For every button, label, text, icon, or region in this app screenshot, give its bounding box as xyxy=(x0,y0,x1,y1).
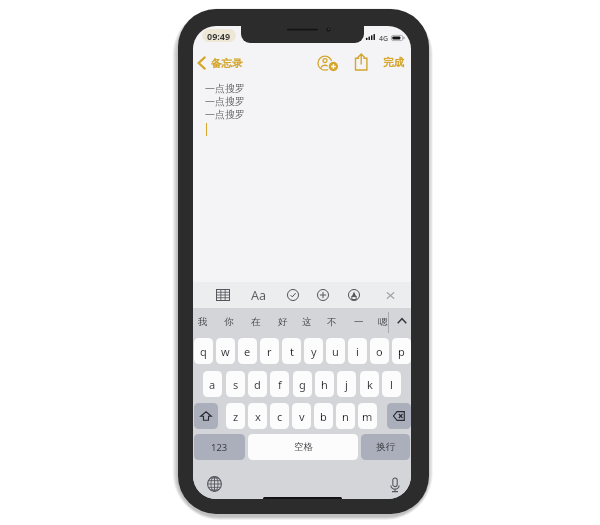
staticText: n xyxy=(342,409,349,424)
button[interactable]: Expand candidates xyxy=(390,308,411,336)
staticText: o xyxy=(376,344,383,359)
button[interactable]: s xyxy=(226,371,245,397)
staticText: m xyxy=(362,409,373,424)
staticText: 123 xyxy=(211,441,228,454)
staticText: b xyxy=(320,409,327,424)
button[interactable]: c xyxy=(270,403,289,429)
button[interactable]: 不 xyxy=(321,308,343,336)
staticText: 一点搜罗 xyxy=(205,95,245,108)
staticText: s xyxy=(233,377,239,392)
button[interactable]: Dictation xyxy=(381,471,406,496)
button[interactable]: o xyxy=(370,338,389,364)
button[interactable]: 嗯 xyxy=(372,308,394,336)
staticText: 一点搜罗 xyxy=(205,82,245,95)
staticText: 一点搜罗 xyxy=(205,108,245,121)
button[interactable]: Add people xyxy=(316,54,340,73)
button[interactable]: v xyxy=(292,403,311,429)
button[interactable]: a xyxy=(203,371,222,397)
button[interactable]: Change keyboard xyxy=(202,471,227,496)
button[interactable]: Insert xyxy=(313,285,333,305)
button[interactable]: 备忘录 xyxy=(197,56,243,70)
button[interactable]: p xyxy=(392,338,411,364)
staticText: a xyxy=(209,377,216,392)
button[interactable]: 在 xyxy=(245,308,267,336)
button[interactable]: k xyxy=(360,371,379,397)
button[interactable]: 123 xyxy=(194,434,245,460)
button[interactable]: 换行 xyxy=(361,434,410,460)
button[interactable]: 你 xyxy=(218,308,240,336)
staticText: h xyxy=(321,377,328,392)
staticText: w xyxy=(221,344,230,359)
button[interactable]: Close keyboard xyxy=(380,285,400,305)
button[interactable]: Shift xyxy=(194,403,218,429)
button[interactable]: Backspace xyxy=(387,403,411,429)
button[interactable]: 一 xyxy=(348,308,370,336)
staticText: i xyxy=(356,344,359,359)
button[interactable]: Checklist xyxy=(283,285,303,305)
staticText: 好 xyxy=(278,316,288,328)
staticText: l xyxy=(390,377,393,392)
button[interactable]: g xyxy=(293,371,312,397)
button[interactable]: 空格 xyxy=(248,434,358,460)
staticText: t xyxy=(290,344,294,359)
button[interactable]: r xyxy=(260,338,279,364)
staticText: 不 xyxy=(327,316,337,328)
button[interactable]: u xyxy=(326,338,345,364)
staticText: y xyxy=(311,344,317,359)
button[interactable]: h xyxy=(315,371,334,397)
staticText: u xyxy=(332,344,339,359)
button[interactable]: Table xyxy=(213,285,233,305)
staticText: 备忘录 xyxy=(211,57,243,70)
button[interactable]: b xyxy=(314,403,333,429)
staticText: e xyxy=(244,344,251,359)
button[interactable]: 这 xyxy=(296,308,318,336)
button[interactable]: z xyxy=(226,403,245,429)
button[interactable]: t xyxy=(282,338,301,364)
staticText: j xyxy=(345,377,348,392)
staticText: 09:49 xyxy=(207,30,231,42)
staticText: g xyxy=(299,377,306,392)
staticText: q xyxy=(200,344,207,359)
button[interactable]: 好 xyxy=(272,308,294,336)
button[interactable]: f xyxy=(270,371,289,397)
button[interactable]: e xyxy=(238,338,257,364)
button[interactable]: x xyxy=(248,403,267,429)
staticText: 一 xyxy=(354,316,364,328)
button[interactable]: j xyxy=(337,371,356,397)
staticText: d xyxy=(254,377,261,392)
staticText: 嗯 xyxy=(378,316,388,328)
button[interactable]: y xyxy=(304,338,323,364)
staticText: v xyxy=(299,409,305,424)
staticText: k xyxy=(367,377,373,392)
button[interactable]: l xyxy=(382,371,401,397)
staticText: 这 xyxy=(302,316,312,328)
staticText: 换行 xyxy=(376,441,395,453)
button[interactable]: 完成 xyxy=(383,56,404,69)
staticText: 完成 xyxy=(383,56,404,69)
staticText: 4G xyxy=(379,34,389,44)
staticText: c xyxy=(277,409,283,424)
staticText: r xyxy=(267,344,272,359)
staticText: x xyxy=(255,409,261,424)
button[interactable]: d xyxy=(248,371,267,397)
button[interactable]: w xyxy=(216,338,235,364)
staticText: 你 xyxy=(224,316,234,328)
staticText: 空格 xyxy=(294,441,313,453)
button[interactable]: 我 xyxy=(193,308,214,336)
staticText: 在 xyxy=(251,316,261,328)
staticText: f xyxy=(278,377,282,392)
staticText: z xyxy=(233,409,239,424)
button[interactable]: q xyxy=(194,338,213,364)
button[interactable]: m xyxy=(358,403,377,429)
button[interactable]: Markup xyxy=(344,285,364,305)
staticText: Aa xyxy=(251,287,267,304)
button[interactable]: Share xyxy=(354,53,368,71)
staticText: 我 xyxy=(198,316,208,328)
staticText: p xyxy=(398,344,405,359)
button[interactable]: Text format xyxy=(249,285,269,305)
button[interactable]: i xyxy=(348,338,367,364)
button[interactable]: n xyxy=(336,403,355,429)
